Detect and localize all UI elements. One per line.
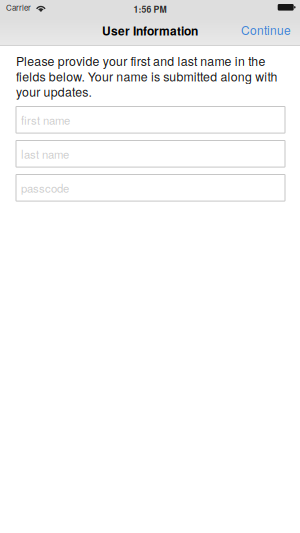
button[interactable]: first name bbox=[16, 106, 285, 133]
staticText: passcode bbox=[21, 180, 69, 196]
button[interactable]: passcode bbox=[16, 174, 285, 201]
staticText: User Information bbox=[102, 22, 198, 39]
staticText: Continue bbox=[241, 21, 291, 38]
staticText: Carrier bbox=[6, 1, 31, 13]
staticText: 1:56 PM bbox=[133, 3, 166, 15]
staticText: first name bbox=[21, 112, 70, 128]
staticText: Please provide your first and last name … bbox=[16, 53, 277, 99]
button[interactable]: Continue bbox=[233, 15, 300, 44]
button[interactable]: last name bbox=[16, 140, 285, 167]
staticText: last name bbox=[21, 146, 69, 162]
